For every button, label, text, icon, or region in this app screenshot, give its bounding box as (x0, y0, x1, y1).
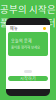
staticText: 시작하기 (20, 76, 36, 81)
staticText: 풀이를 정리해 보세요 (11, 45, 40, 50)
staticText: 오늘의 문제 (11, 38, 32, 44)
button[interactable]: 시작하기 (8, 76, 48, 81)
staticText: 공부의 시작은 (0, 2, 56, 15)
staticText: 풀이 정리부터 (0, 15, 56, 29)
staticText: 메뉴 (10, 26, 18, 31)
